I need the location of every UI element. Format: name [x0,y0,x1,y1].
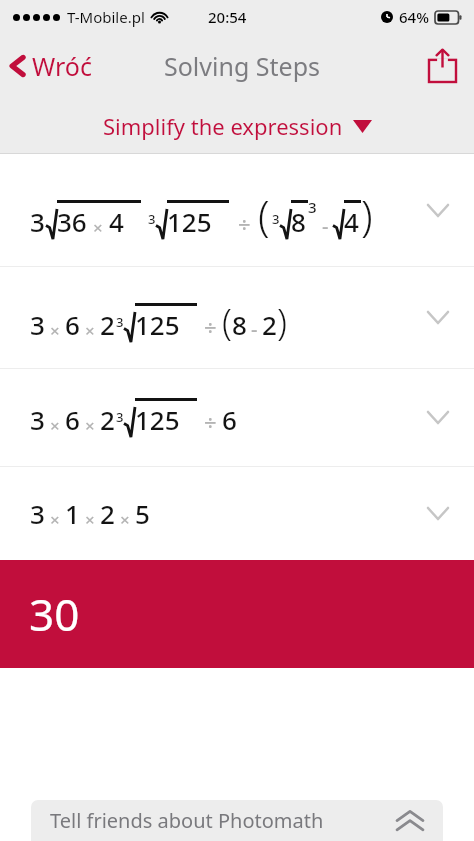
button[interactable]: 3 [0,369,474,466]
staticText: 125 [135,402,180,437]
staticText: 3 [30,204,45,239]
button[interactable]: Share [419,39,466,92]
staticText: 3 [30,402,45,437]
staticText: ÷ [204,312,217,342]
button[interactable]: 3 [0,267,474,368]
staticText: Wróć [32,49,92,83]
staticText: ( [258,186,270,243]
button[interactable]: 3 [0,154,474,266]
staticText: ÷ [204,407,217,437]
staticText: 3 [308,197,317,217]
staticText: 3 [30,307,45,342]
staticText: 2 [262,307,277,342]
staticText: 3 [30,496,45,531]
staticText: Simplify the expression [103,111,343,141]
staticText: 125 [167,204,212,239]
staticText: 64% [399,7,429,27]
staticText: × [85,319,95,342]
staticText: 8 [291,204,306,239]
staticText: 3 [116,408,124,426]
staticText: 6 [222,402,237,437]
staticText: × [50,508,60,531]
staticText: × [85,508,95,531]
button[interactable]: 3 [0,467,474,560]
staticText: Tell friends about Photomath [50,807,324,834]
button[interactable]: Wróć [0,41,106,91]
staticText: 3 [148,210,156,228]
staticText: 8 [232,307,247,342]
staticText: - [251,315,258,342]
staticText: 20:54 [208,7,247,27]
staticText: Solving Steps [164,49,320,83]
staticText: 2 [100,496,115,531]
staticText: × [93,216,103,239]
staticText: ÷ [238,209,251,239]
button[interactable]: Tell friends about Photomath [31,800,443,841]
staticText: 30 [29,584,80,644]
staticText: 3 [272,210,280,228]
staticText: 2 [100,402,115,437]
staticText: × [50,319,60,342]
staticText: 1 [65,496,80,531]
staticText: 4 [109,204,124,239]
staticText: 5 [135,496,150,531]
staticText: 6 [65,307,80,342]
staticText: 125 [135,307,180,342]
staticText: × [85,414,95,437]
staticText: - [322,212,329,239]
staticText: × [120,508,130,531]
staticText: 3 [116,313,124,331]
staticText: ) [277,297,287,346]
button[interactable]: 30 [0,560,474,668]
staticText: 36 [57,204,87,239]
staticText: × [50,414,60,437]
staticText: 2 [100,307,115,342]
staticText: 4 [344,204,359,239]
staticText: 6 [65,402,80,437]
staticText: T-Mobile.pl [67,7,145,27]
staticText: ) [361,186,373,243]
button[interactable]: Simplify the expression [97,105,378,147]
staticText: ( [222,297,232,346]
